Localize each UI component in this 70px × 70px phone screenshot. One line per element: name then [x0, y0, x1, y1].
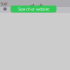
staticText: Search or website	[18, 6, 49, 12]
staticText: 9:41	[0, 1, 7, 6]
staticText: aA	[30, 3, 35, 8]
button[interactable]: Add	[39, 1, 43, 10]
staticText: +	[39, 1, 43, 10]
button[interactable]: Text size	[30, 3, 35, 8]
